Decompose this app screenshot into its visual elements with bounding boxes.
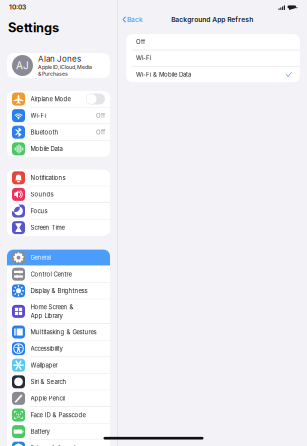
staticText: Apple ID, iCloud, Media — [38, 64, 92, 70]
staticText: Off — [96, 129, 105, 136]
staticText: Mobile Data — [30, 145, 62, 152]
button[interactable]: Wi-Fi & Mobile Data — [126, 67, 300, 82]
staticText: Wi-Fi — [136, 54, 151, 62]
staticText: Off — [136, 38, 145, 45]
staticText: Bluetooth — [30, 129, 58, 136]
staticText: Back — [127, 15, 143, 24]
staticText: AJ — [16, 59, 29, 72]
button[interactable]: Bluetooth — [7, 124, 110, 140]
button[interactable]: Wi-Fi — [7, 108, 110, 124]
staticText: Notifications — [30, 174, 65, 181]
staticText: Home Screen & — [30, 303, 73, 311]
button[interactable]: Screen Time — [7, 220, 110, 236]
button[interactable]: Control Centre — [7, 266, 110, 282]
staticText: Off — [96, 112, 105, 119]
staticText: & Purchases — [38, 71, 68, 77]
staticText: Focus — [30, 207, 47, 215]
staticText: Siri & Search — [30, 378, 66, 385]
staticText: Multitasking & Gestures — [30, 328, 96, 336]
button[interactable]: Notifications — [7, 170, 110, 186]
staticText: Control Centre — [30, 271, 71, 278]
button[interactable]: AJ — [7, 53, 110, 78]
staticText: Face ID & Passcode — [30, 411, 85, 419]
button[interactable]: Face ID & Passcode — [7, 407, 110, 423]
staticText: Alan Jones — [38, 54, 81, 64]
staticText: 10:03 — [9, 3, 26, 11]
staticText: Display & Brightness — [30, 287, 87, 294]
staticText: Accessibility — [30, 345, 62, 352]
button[interactable]: Display & Brightness — [7, 283, 110, 299]
staticText: Background App Refresh — [171, 15, 253, 24]
button[interactable]: Home Screen & — [7, 299, 110, 323]
staticText: General — [30, 254, 50, 261]
button[interactable]: Off — [126, 34, 300, 50]
staticText: App Library — [30, 312, 62, 319]
staticText: Battery — [30, 428, 49, 435]
button[interactable]: Apple Pencil — [7, 390, 110, 406]
staticText: Screen Time — [30, 224, 64, 231]
staticText: Wi-Fi — [30, 112, 45, 119]
staticText: Apple Pencil — [30, 395, 64, 402]
button[interactable]: Focus — [7, 203, 110, 219]
button[interactable]: Mobile Data — [7, 141, 110, 157]
button[interactable]: Back — [117, 12, 149, 26]
button[interactable]: Privacy & Security — [7, 440, 110, 446]
staticText: Wallpaper — [30, 362, 57, 369]
staticText: Privacy & Security — [30, 445, 79, 446]
button[interactable]: Multitasking & Gestures — [7, 324, 110, 340]
staticText: Settings — [8, 20, 59, 35]
button[interactable]: Airplane Mode — [7, 91, 110, 107]
button[interactable]: Wallpaper — [7, 357, 110, 373]
staticText: Airplane Mode — [30, 95, 70, 103]
staticText: Wi-Fi & Mobile Data — [136, 71, 191, 78]
button[interactable]: General — [7, 250, 110, 266]
button[interactable]: Battery — [7, 424, 110, 440]
button[interactable]: Siri & Search — [7, 374, 110, 390]
staticText: Sounds — [30, 191, 53, 198]
button[interactable]: Accessibility — [7, 341, 110, 357]
button[interactable]: Sounds — [7, 186, 110, 202]
button[interactable]: Wi-Fi — [126, 50, 300, 66]
